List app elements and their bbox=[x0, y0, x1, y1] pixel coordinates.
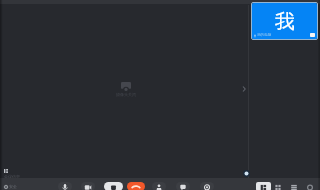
button[interactable]: List layout bbox=[287, 182, 301, 190]
button[interactable]: Share screen bbox=[104, 182, 123, 190]
button[interactable]: Meeting security bbox=[4, 184, 17, 189]
button[interactable]: More options bbox=[200, 182, 214, 190]
button[interactable]: Meeting information bbox=[4, 169, 20, 179]
staticText: 摄像头关闭 bbox=[116, 92, 136, 97]
button[interactable]: Chat bbox=[176, 182, 190, 190]
button[interactable]: End meeting bbox=[127, 182, 145, 190]
button[interactable]: Full screen bbox=[303, 182, 317, 190]
staticText: 会议信息 bbox=[4, 174, 20, 179]
button[interactable]: Sidebar layout bbox=[256, 182, 271, 190]
button[interactable]: Grid layout bbox=[271, 182, 285, 190]
staticText: 安全 bbox=[9, 184, 17, 189]
button[interactable]: Mute microphone bbox=[58, 182, 72, 190]
button[interactable]: Stop video bbox=[81, 182, 95, 190]
button[interactable]: My video tile bbox=[252, 3, 317, 39]
button[interactable]: Participants bbox=[152, 182, 166, 190]
staticText: 我的电脑 bbox=[257, 33, 272, 38]
button[interactable]: Collapse participant panel bbox=[240, 82, 248, 96]
staticText: 我 bbox=[275, 9, 295, 34]
